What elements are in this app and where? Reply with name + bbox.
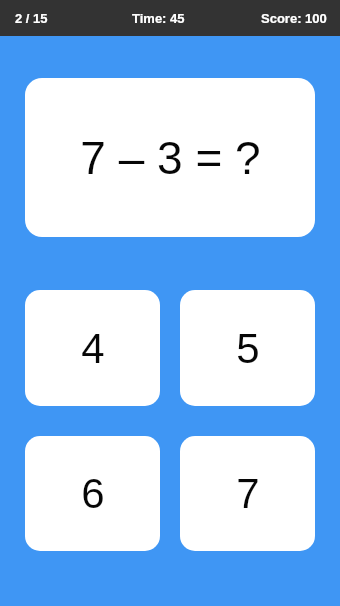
staticText: 6 — [81, 470, 105, 517]
staticText: 4 — [81, 325, 105, 372]
staticText: 7 – 3 = ? — [80, 132, 261, 183]
button[interactable]: 7 — [180, 436, 315, 551]
staticText: 2 / 15 — [15, 11, 48, 26]
button[interactable]: 4 — [25, 290, 160, 406]
staticText: Time: 45 — [132, 11, 185, 26]
staticText: 7 — [236, 470, 260, 517]
button[interactable]: 5 — [180, 290, 315, 406]
staticText: Score: 100 — [261, 11, 327, 26]
button[interactable]: 6 — [25, 436, 160, 551]
staticText: 5 — [236, 325, 260, 372]
